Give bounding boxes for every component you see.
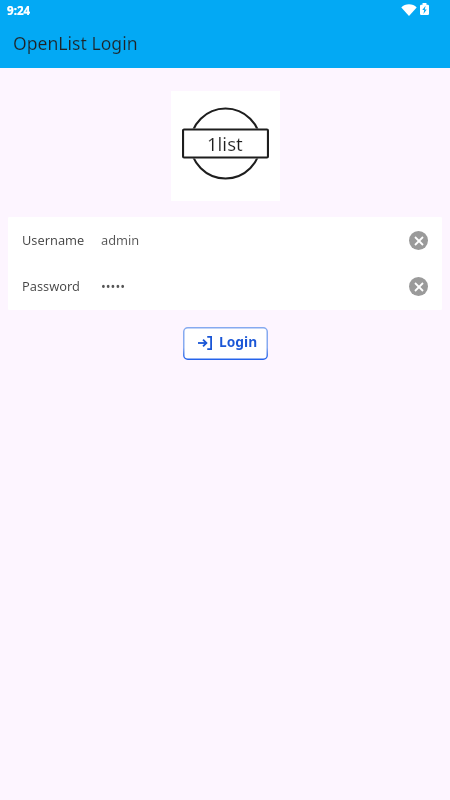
- button[interactable]: Clear Username: [409, 231, 428, 250]
- button[interactable]: Clear Password: [409, 277, 428, 296]
- staticText: •••••: [101, 277, 126, 294]
- staticText: 9:24: [7, 3, 31, 19]
- button[interactable]: Username: [8, 217, 442, 264]
- staticText: OpenList Login: [13, 31, 138, 55]
- staticText: admin: [101, 231, 140, 248]
- button[interactable]: Password: [8, 264, 442, 310]
- button[interactable]: Login: [183, 327, 268, 360]
- staticText: 1list: [207, 131, 243, 156]
- staticText: Username: [22, 231, 85, 248]
- staticText: Login: [219, 332, 258, 351]
- staticText: Password: [22, 277, 80, 294]
